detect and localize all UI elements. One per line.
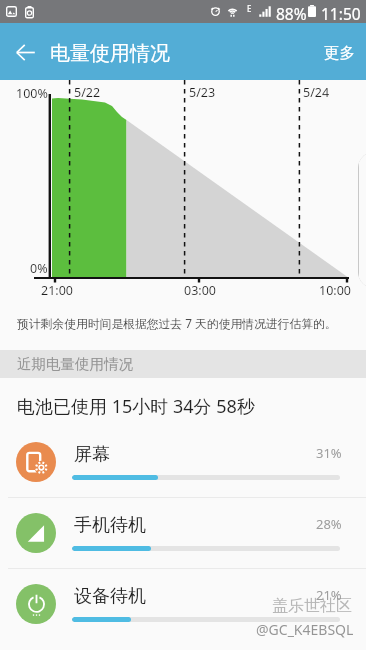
staticText: 100%: [16, 85, 48, 102]
staticText: 近期电量使用情况: [17, 355, 133, 373]
staticText: 预计剩余使用时间是根据您过去 7 天的使用情况进行估算的。: [17, 315, 337, 331]
button[interactable]: 设备待机: [0, 569, 366, 639]
staticText: @GC_K4EBSQL: [256, 620, 354, 639]
staticText: 5/23: [189, 84, 216, 101]
staticText: 11:50: [321, 3, 361, 24]
staticText: 盖乐世社区: [272, 596, 352, 616]
staticText: 屏幕: [74, 443, 110, 466]
staticText: 电量使用情况: [50, 41, 170, 66]
staticText: 电池已使用 15小时 34分 58秒: [17, 394, 255, 419]
staticText: 21:00: [41, 282, 73, 299]
staticText: 31%: [316, 444, 342, 462]
staticText: E: [247, 3, 252, 14]
staticText: 88%: [276, 3, 307, 24]
button[interactable]: 屏幕: [0, 427, 366, 497]
button[interactable]: 返回: [10, 37, 40, 67]
staticText: 更多: [324, 43, 355, 63]
button[interactable]: 更多: [324, 43, 355, 63]
staticText: 5/24: [303, 84, 330, 101]
button[interactable]: 手机待机: [0, 498, 366, 568]
staticText: 0%: [30, 260, 48, 277]
staticText: 03:00: [184, 282, 216, 299]
staticText: 28%: [316, 515, 342, 533]
staticText: 10:00: [319, 282, 351, 299]
staticText: 5/22: [74, 84, 101, 101]
staticText: 手机待机: [74, 514, 146, 537]
staticText: 设备待机: [74, 585, 146, 608]
staticText: 21%: [316, 586, 342, 604]
